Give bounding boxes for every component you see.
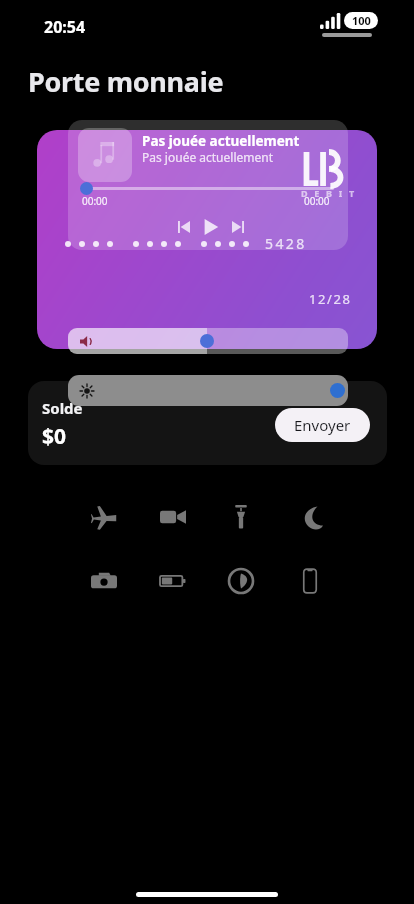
staticText: 100 — [352, 13, 371, 28]
button[interactable]: Camera — [82, 559, 126, 603]
staticText: 00:00 — [82, 194, 108, 208]
button[interactable]: Airplane mode — [82, 495, 126, 539]
staticText: Envoyer — [294, 415, 351, 435]
button[interactable]: Device — [288, 559, 332, 603]
button[interactable]: Pas jouée actuellement — [68, 120, 348, 250]
button[interactable]: Previous — [176, 219, 192, 235]
button[interactable]: Do not disturb — [288, 495, 332, 539]
staticText: Pas jouée actuellement — [142, 149, 273, 165]
button[interactable]: Battery — [151, 559, 195, 603]
staticText: 12/28 — [309, 290, 352, 308]
button[interactable]: Envoyer — [275, 408, 370, 442]
staticText: 5428 — [265, 234, 307, 253]
staticText: $0 — [42, 422, 67, 451]
staticText: Pas jouée actuellement — [142, 132, 300, 150]
staticText: 00:00 — [304, 194, 330, 208]
button[interactable]: Solde — [28, 381, 387, 465]
button[interactable]: Video — [151, 495, 195, 539]
button[interactable]: D E B I T — [37, 130, 377, 349]
button[interactable]: Theme — [219, 559, 263, 603]
button[interactable]: Brightness — [68, 375, 348, 406]
staticText: Porte monnaie — [28, 63, 224, 100]
staticText: D E B I T — [301, 187, 357, 199]
button[interactable]: Next — [230, 219, 246, 235]
button[interactable]: Flashlight — [219, 495, 263, 539]
button[interactable]: Volume — [68, 328, 348, 354]
staticText: 20:54 — [44, 16, 86, 38]
staticText: Solde — [42, 398, 83, 418]
button[interactable]: Play — [200, 216, 222, 238]
